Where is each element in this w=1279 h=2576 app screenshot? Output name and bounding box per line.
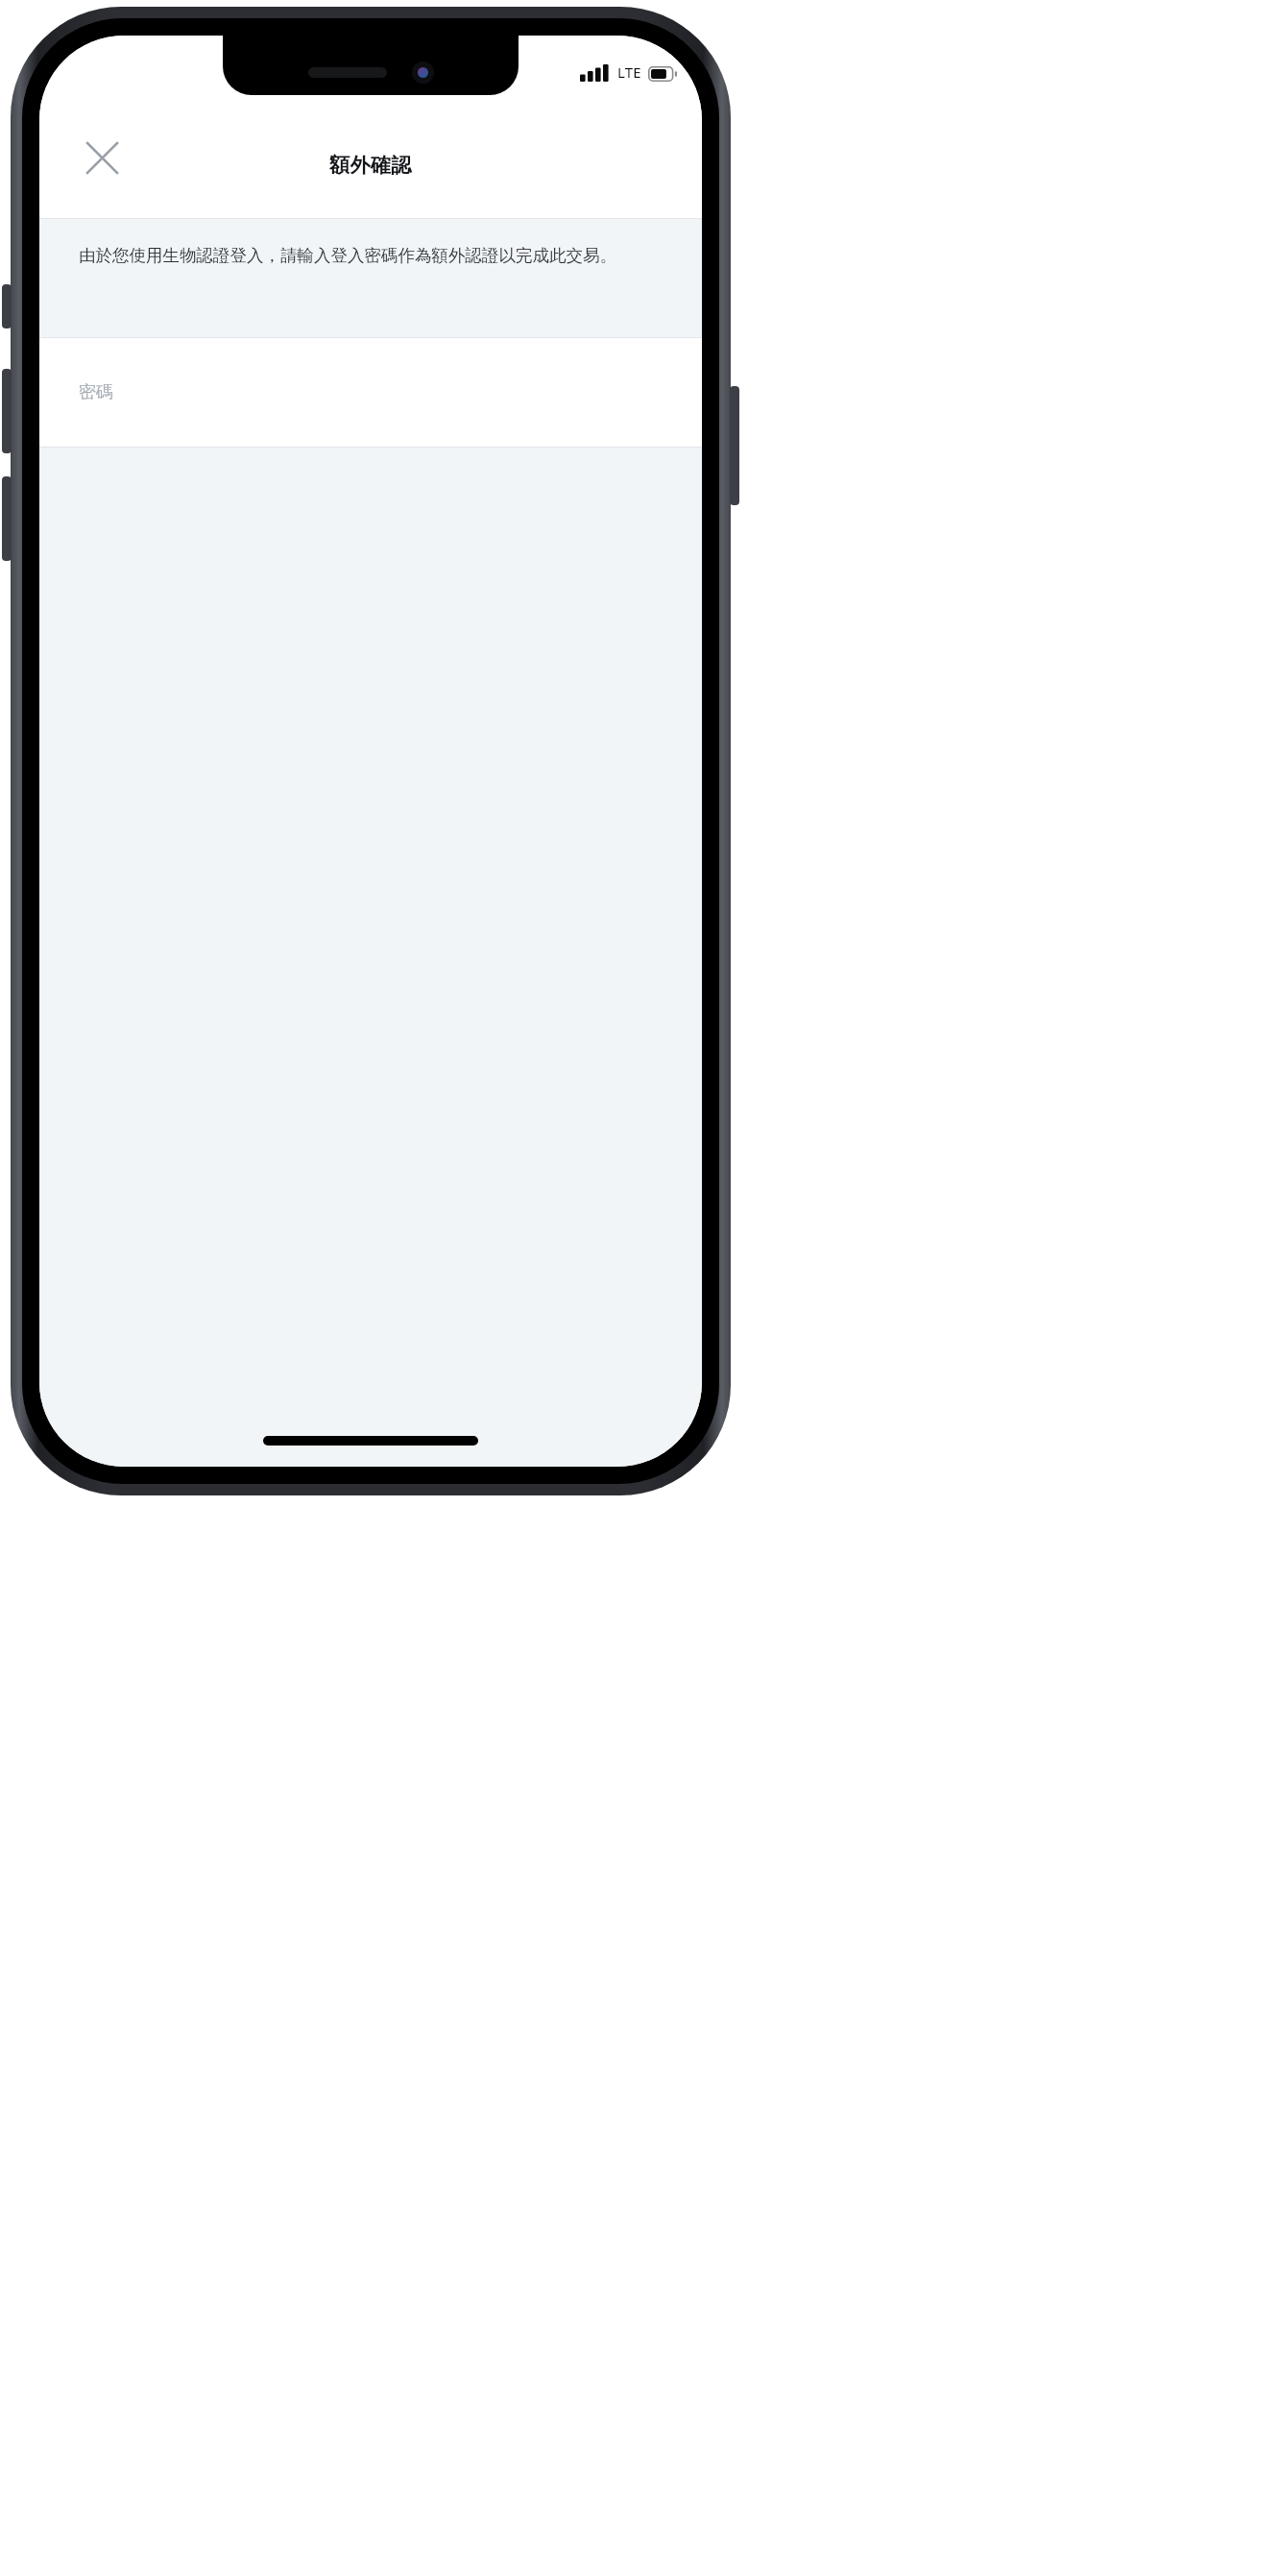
staticText: 額外確認 <box>329 153 412 178</box>
staticText: 由於您使用生物認證登入，請輸入登入密碼作為額外認證以完成此交易。 <box>79 245 616 266</box>
staticText: 密碼 <box>79 381 113 403</box>
button[interactable]: 密碼 <box>39 338 702 447</box>
button[interactable]: Close <box>76 132 128 183</box>
staticText: LTE <box>617 62 641 82</box>
